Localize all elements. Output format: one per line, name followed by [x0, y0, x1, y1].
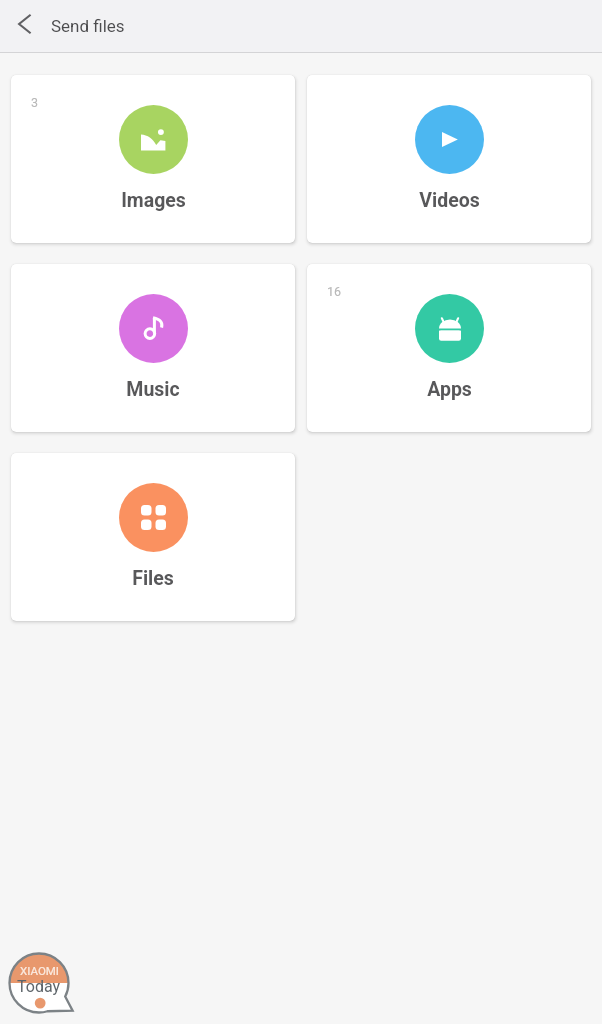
button[interactable]: Files: [11, 453, 295, 621]
button[interactable]: Back: [0, 0, 44, 52]
staticText: Apps: [427, 378, 472, 401]
staticText: Music: [126, 378, 180, 401]
staticText: Send files: [51, 16, 125, 36]
button[interactable]: 16: [307, 264, 591, 432]
staticText: Today: [17, 977, 61, 996]
staticText: Files: [132, 567, 174, 590]
button[interactable]: 3: [11, 75, 295, 243]
staticText: Images: [121, 189, 186, 212]
button[interactable]: Videos: [307, 75, 591, 243]
button[interactable]: Music: [11, 264, 295, 432]
staticText: XIAOMI: [20, 964, 59, 977]
staticText: 16: [327, 284, 342, 299]
staticText: 3: [31, 95, 39, 110]
staticText: Videos: [419, 189, 480, 212]
